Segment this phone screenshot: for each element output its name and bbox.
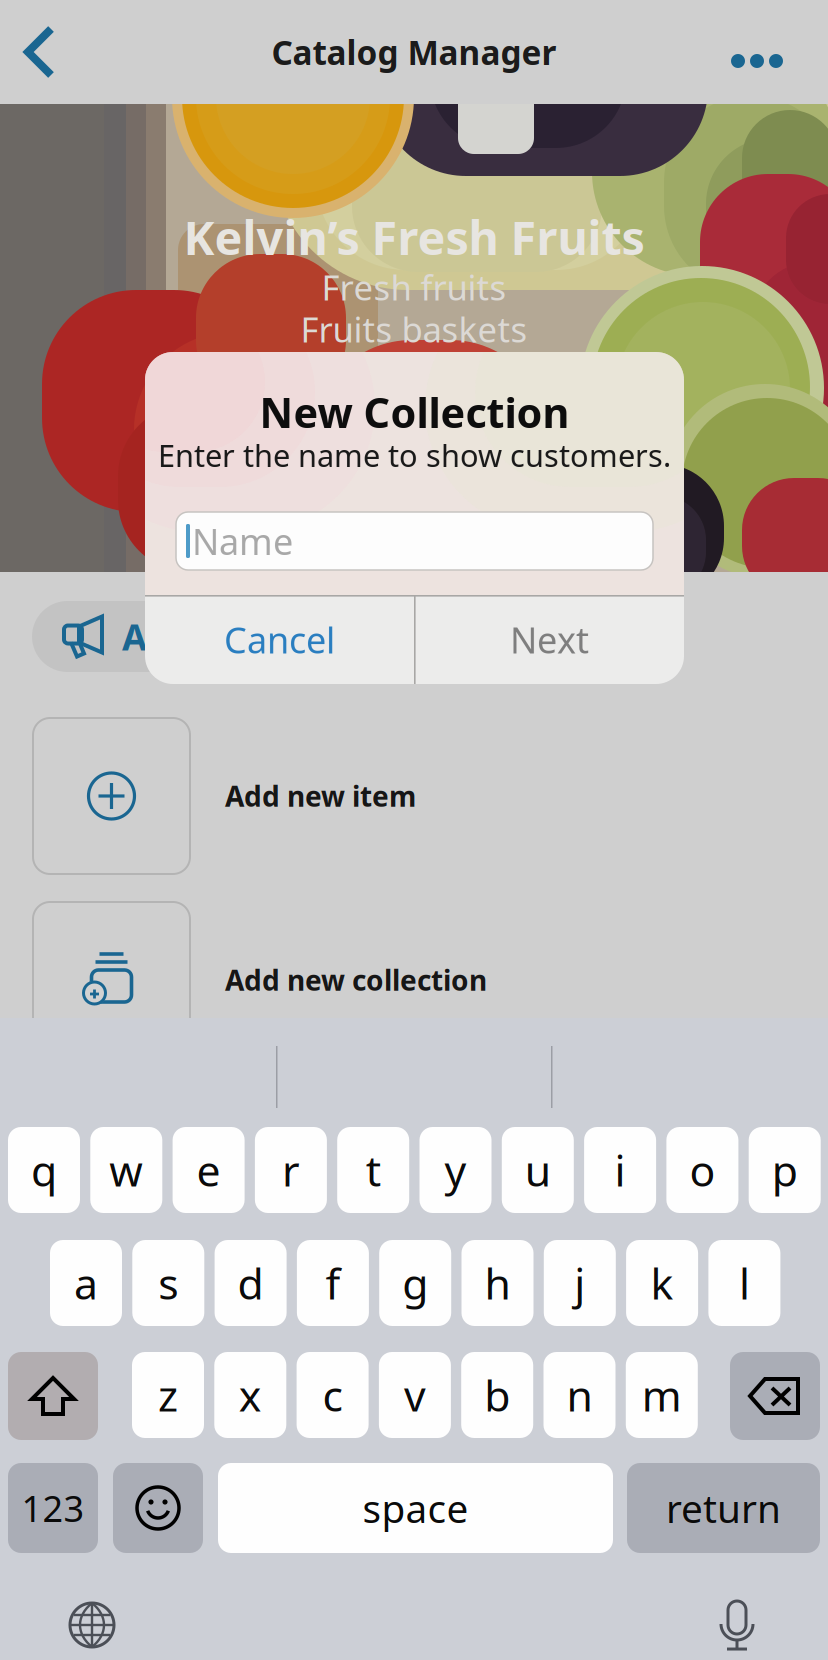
staticText: a (74, 1255, 98, 1311)
staticText: t (366, 1142, 381, 1198)
staticText: Advertise (122, 613, 294, 660)
staticText: e (197, 1142, 221, 1198)
staticText: s (158, 1255, 178, 1311)
button[interactable]: Advertise (32, 601, 332, 672)
button[interactable]: k (626, 1240, 698, 1326)
button[interactable]: Emoji (113, 1463, 203, 1553)
button[interactable]: space (218, 1463, 613, 1553)
staticText: n (566, 1367, 592, 1423)
button[interactable]: p (749, 1127, 821, 1213)
staticText: m (642, 1367, 682, 1423)
button[interactable]: g (379, 1240, 451, 1326)
staticText: Cancel (224, 616, 335, 663)
button[interactable]: i (584, 1127, 656, 1213)
staticText: Catalog Manager (271, 30, 556, 74)
staticText: l (739, 1255, 750, 1311)
staticText: Next (510, 616, 589, 663)
staticText: z (158, 1367, 178, 1423)
staticText: b (484, 1367, 510, 1423)
button[interactable]: n (543, 1352, 615, 1438)
button[interactable]: j (544, 1240, 616, 1326)
button[interactable]: Dictate (698, 1590, 778, 1660)
button[interactable]: q (8, 1127, 80, 1213)
button[interactable]: y (419, 1127, 491, 1213)
staticText: u (525, 1142, 551, 1198)
button[interactable]: 123 (8, 1463, 98, 1553)
staticText: r (282, 1142, 300, 1198)
button[interactable]: o (666, 1127, 738, 1213)
button[interactable]: f (297, 1240, 369, 1326)
button[interactable]: z (132, 1352, 204, 1438)
staticText: w (109, 1142, 143, 1198)
staticText: Kelvin’s Fresh Fruits (183, 206, 644, 268)
button[interactable]: s (132, 1240, 204, 1326)
button[interactable]: d (215, 1240, 287, 1326)
button[interactable]: a (50, 1240, 122, 1326)
button[interactable]: l (708, 1240, 780, 1326)
staticText: k (651, 1255, 674, 1311)
staticText: 123 (21, 1484, 84, 1532)
button[interactable]: More (731, 0, 828, 113)
button[interactable]: Cancel (145, 595, 414, 684)
staticText: Fruits baskets (300, 306, 527, 352)
staticText: Add new item (225, 777, 416, 815)
staticText: Name (192, 517, 293, 565)
staticText: f (325, 1255, 340, 1311)
staticText: y (444, 1142, 466, 1198)
button[interactable]: b (461, 1352, 533, 1438)
staticText: return (666, 1482, 781, 1534)
staticText: Fruit juice (334, 348, 494, 394)
button[interactable]: Next (415, 595, 684, 684)
staticText: space (362, 1482, 468, 1534)
button[interactable]: return (627, 1463, 820, 1553)
button[interactable]: Delete (730, 1352, 820, 1440)
staticText: New Collection (259, 385, 569, 439)
button[interactable]: w (90, 1127, 162, 1213)
staticText: q (31, 1142, 57, 1198)
staticText: Enter the name to show customers. (158, 435, 671, 475)
button[interactable]: r (255, 1127, 327, 1213)
staticText: p (772, 1142, 798, 1198)
button[interactable]: h (461, 1240, 533, 1326)
button[interactable]: t (337, 1127, 409, 1213)
button[interactable]: Add new item (33, 718, 795, 874)
staticText: c (323, 1367, 343, 1423)
button[interactable]: x (214, 1352, 286, 1438)
staticText: v (404, 1367, 426, 1423)
staticText: d (238, 1255, 264, 1311)
button[interactable]: Shift (8, 1352, 98, 1440)
button[interactable]: Back (0, 0, 80, 104)
button[interactable]: u (502, 1127, 574, 1213)
button[interactable]: c (297, 1352, 369, 1438)
staticText: Fresh fruits (321, 264, 506, 310)
button[interactable]: Add new collection (33, 902, 795, 1058)
button[interactable]: v (379, 1352, 451, 1438)
button[interactable]: Next keyboard (52, 1590, 132, 1660)
staticText: h (484, 1255, 510, 1311)
staticText: Add new collection (225, 961, 487, 999)
staticText: g (402, 1255, 428, 1311)
button[interactable]: m (626, 1352, 698, 1438)
staticText: j (574, 1255, 585, 1311)
staticText: o (689, 1142, 715, 1198)
button[interactable]: e (173, 1127, 245, 1213)
staticText: i (615, 1142, 626, 1198)
staticText: x (239, 1367, 262, 1423)
